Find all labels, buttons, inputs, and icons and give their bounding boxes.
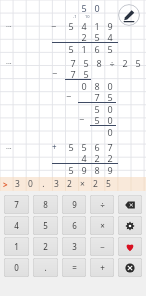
button[interactable]: > xyxy=(0,177,146,191)
staticText: 9 xyxy=(81,164,87,176)
staticText: 2 xyxy=(43,241,48,252)
button[interactable]: − xyxy=(90,237,114,256)
button[interactable]: Handwriting input xyxy=(118,4,140,26)
staticText: 8 xyxy=(94,80,100,92)
staticText: 8 xyxy=(94,164,100,176)
staticText: 8 xyxy=(43,199,48,210)
staticText: × xyxy=(100,220,105,231)
staticText: 4 xyxy=(107,31,113,43)
staticText: 1 xyxy=(81,43,87,55)
button[interactable]: Backspace xyxy=(118,195,142,214)
staticText: 5 xyxy=(81,2,87,14)
staticText: + xyxy=(52,141,57,152)
button[interactable]: + xyxy=(90,258,114,277)
staticText: 5 xyxy=(43,220,48,231)
staticText: 0 xyxy=(81,80,87,92)
staticText: 1 xyxy=(14,241,19,252)
staticText: × xyxy=(80,178,85,190)
staticText: 4 xyxy=(14,220,19,231)
staticText: 5 xyxy=(83,68,89,80)
staticText: − xyxy=(79,113,85,125)
staticText: 2 xyxy=(107,152,113,164)
staticText: = xyxy=(72,262,77,273)
button[interactable]: 2 xyxy=(33,237,58,256)
staticText: . xyxy=(42,178,45,190)
staticText: 9 xyxy=(107,20,113,32)
staticText: 0 xyxy=(107,103,113,115)
staticText: 9 xyxy=(107,164,113,176)
button[interactable]: Favorites xyxy=(118,237,142,256)
button[interactable]: 7 xyxy=(4,195,29,214)
button[interactable]: 5 xyxy=(33,216,58,235)
button[interactable]: = xyxy=(62,258,86,277)
button[interactable]: Settings xyxy=(118,216,142,235)
staticText: > xyxy=(3,179,8,190)
staticText: 2 xyxy=(81,31,87,43)
staticText: 5 xyxy=(68,20,74,32)
staticText: 0 xyxy=(28,178,33,190)
staticText: ... xyxy=(6,142,12,152)
staticText: 2 xyxy=(93,178,98,190)
staticText: 8 xyxy=(96,57,102,69)
staticText: ... xyxy=(6,57,12,67)
staticText: 2 xyxy=(122,57,128,69)
button[interactable]: 8 xyxy=(33,195,58,214)
staticText: 0 xyxy=(94,2,100,14)
staticText: -1 xyxy=(73,14,77,19)
staticText: 2 xyxy=(94,152,100,164)
staticText: 5 xyxy=(94,31,100,43)
staticText: 5 xyxy=(106,178,111,190)
staticText: 0 xyxy=(107,126,113,138)
staticText: 5 xyxy=(68,141,74,153)
staticText: − xyxy=(100,241,105,252)
staticText: 5 xyxy=(107,91,113,103)
button[interactable]: . xyxy=(33,258,58,277)
button[interactable]: 9 xyxy=(62,195,86,214)
staticText: 5 xyxy=(94,103,100,115)
staticText: − xyxy=(66,90,72,102)
staticText: 5 xyxy=(107,43,113,55)
staticText: 2 xyxy=(67,178,72,190)
staticText: 5 xyxy=(94,114,100,126)
staticText: 4 xyxy=(81,152,87,164)
staticText: 6 xyxy=(94,141,100,153)
staticText: 5 xyxy=(81,141,87,153)
staticText: ÷ xyxy=(100,199,105,210)
staticText: 7 xyxy=(70,57,76,69)
staticText: 3 xyxy=(54,178,59,190)
staticText: 3 xyxy=(15,178,20,190)
button[interactable]: × xyxy=(90,216,114,235)
staticText: 7 xyxy=(14,199,19,210)
staticText: 0 xyxy=(107,114,113,126)
button[interactable]: Clear xyxy=(118,258,142,277)
staticText: 0 xyxy=(14,262,19,273)
staticText: 6 xyxy=(94,43,100,55)
staticText: . xyxy=(44,262,47,273)
staticText: 5 xyxy=(68,164,74,176)
staticText: ÷ xyxy=(109,57,115,69)
button[interactable]: 1 xyxy=(4,237,29,256)
staticText: 5 xyxy=(83,57,89,69)
button[interactable]: 6 xyxy=(62,216,86,235)
button[interactable]: 0 xyxy=(4,258,29,277)
staticText: 1 xyxy=(94,20,100,32)
staticText: − xyxy=(51,20,57,32)
staticText: 9 xyxy=(72,199,77,210)
staticText: − xyxy=(52,67,58,79)
staticText: 0 xyxy=(107,80,113,92)
staticText: 3 xyxy=(72,241,77,252)
staticText: 4 xyxy=(81,20,87,32)
button[interactable]: 4 xyxy=(4,216,29,235)
staticText: 7 xyxy=(70,68,76,80)
staticText: 7 xyxy=(94,91,100,103)
staticText: + xyxy=(100,262,105,273)
staticText: 5 xyxy=(68,43,74,55)
button[interactable]: ÷ xyxy=(90,195,114,214)
staticText: ... xyxy=(6,20,12,30)
staticText: 5 xyxy=(135,57,141,69)
staticText: 10 xyxy=(85,14,90,19)
staticText: 7 xyxy=(107,141,113,153)
button[interactable]: 3 xyxy=(62,237,86,256)
staticText: 6 xyxy=(72,220,77,231)
